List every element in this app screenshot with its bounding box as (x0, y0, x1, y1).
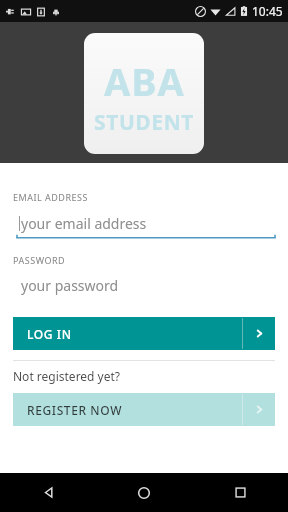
button[interactable]: Recent apps (192, 473, 288, 512)
button[interactable]: LOG IN (13, 317, 275, 350)
staticText: your email address (21, 214, 147, 233)
staticText: EMAIL ADDRESS (13, 191, 88, 203)
staticText: STUDENT (94, 108, 195, 137)
staticText: PASSWORD (13, 254, 66, 266)
button[interactable]: REGISTER NOW (13, 393, 275, 426)
staticText: your password (21, 276, 119, 295)
staticText: REGISTER NOW (27, 402, 123, 418)
staticText: 10:45 (252, 3, 283, 19)
button[interactable]: Home (96, 473, 192, 512)
staticText: LOG IN (27, 326, 72, 342)
button[interactable]: your password (0, 274, 288, 296)
button[interactable]: Back (0, 473, 96, 512)
button[interactable]: your email address (0, 211, 288, 235)
staticText: Not registered yet? (13, 368, 121, 384)
staticText: ABA (104, 55, 185, 107)
